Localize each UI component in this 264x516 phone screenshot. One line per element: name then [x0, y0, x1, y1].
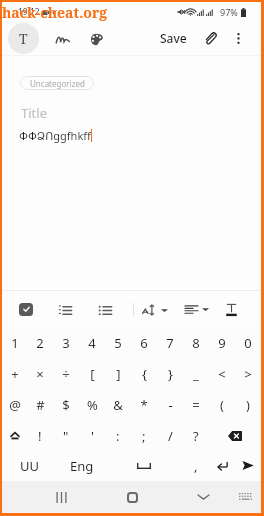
button[interactable]: ; [131, 420, 157, 451]
button[interactable]: $ [53, 389, 79, 420]
button[interactable]: Recents [47, 483, 75, 511]
button[interactable]: , [183, 451, 209, 480]
staticText: 0 [244, 334, 252, 352]
button[interactable]: 8 [183, 327, 209, 358]
button[interactable]: Backspace [209, 420, 261, 451]
staticText: ' [91, 427, 94, 445]
button[interactable]: & [105, 389, 131, 420]
staticText: 4 [88, 334, 96, 352]
staticText: : [116, 427, 120, 445]
button[interactable]: : [105, 420, 131, 451]
button[interactable]: 3 [53, 327, 79, 358]
button[interactable]: 9 [209, 327, 235, 358]
staticText: _ [193, 365, 199, 383]
button[interactable]: ] [105, 358, 131, 389]
button[interactable]: Text format [225, 302, 237, 318]
button[interactable]: @ [2, 389, 27, 420]
staticText: Save [160, 30, 187, 46]
staticText: Eng [70, 457, 94, 475]
staticText: T [19, 29, 28, 48]
staticText: × [36, 365, 44, 383]
button[interactable]: % [79, 389, 105, 420]
button[interactable]: < [209, 358, 235, 389]
staticText: , [194, 457, 198, 475]
staticText: - [168, 396, 173, 414]
button[interactable]: Hide keyboard [189, 483, 217, 511]
staticText: 3 [62, 334, 70, 352]
staticText: 97% [220, 6, 238, 18]
staticText: ÷ [62, 365, 70, 383]
button[interactable]: - [157, 389, 183, 420]
button[interactable]: { [131, 358, 157, 389]
staticText: + [11, 365, 19, 383]
button[interactable]: 1 [2, 327, 27, 358]
button[interactable]: Eng [58, 451, 105, 480]
staticText: ! [38, 427, 42, 445]
staticText: 9 [218, 334, 226, 352]
staticText: hack-cheat.org [2, 3, 108, 22]
staticText: * [140, 396, 148, 414]
button[interactable]: = [183, 389, 209, 420]
button[interactable]: Uncategorized [20, 76, 94, 90]
staticText: $ [62, 396, 70, 414]
button[interactable]: ! [27, 420, 53, 451]
button[interactable]: ' [79, 420, 105, 451]
button[interactable]: 4 [79, 327, 105, 358]
button[interactable]: More options [228, 28, 248, 48]
button[interactable]: 6 [131, 327, 157, 358]
button[interactable]: Save [157, 25, 190, 51]
staticText: ) [246, 396, 250, 414]
button[interactable]: > [235, 358, 261, 389]
staticText: = [192, 396, 200, 414]
button[interactable]: 0 [235, 327, 261, 358]
button[interactable]: Checklist [19, 303, 33, 316]
button[interactable]: } [157, 358, 183, 389]
button[interactable]: Shift [2, 420, 27, 451]
button[interactable]: Alignment [183, 299, 211, 320]
button[interactable]: Change keyboard [231, 483, 259, 511]
button[interactable]: Enter [209, 451, 235, 480]
button[interactable]: Attach [199, 27, 221, 49]
staticText: 19:12 [18, 6, 40, 18]
button[interactable]: [ [79, 358, 105, 389]
button[interactable]: Symbols [2, 451, 58, 480]
button[interactable]: ( [209, 389, 235, 420]
button[interactable]: " [53, 420, 79, 451]
staticText: < [218, 365, 226, 383]
button[interactable]: ÷ [53, 358, 79, 389]
staticText: { [142, 365, 147, 383]
staticText: ; [142, 427, 146, 445]
staticText: ՓՓՁՈggfhkff [19, 128, 91, 143]
staticText: & [113, 396, 123, 414]
staticText: > [244, 365, 252, 383]
button[interactable]: 2 [27, 327, 53, 358]
staticText: 1 [11, 334, 19, 352]
button[interactable]: Home [118, 483, 146, 511]
staticText: ( [220, 396, 224, 414]
button[interactable]: Text mode [8, 23, 39, 54]
button[interactable]: Space [105, 451, 183, 480]
button[interactable]: + [2, 358, 27, 389]
button[interactable]: ) [235, 389, 261, 420]
staticText: / [168, 427, 173, 445]
button[interactable]: Handwriting [50, 27, 74, 51]
button[interactable]: Font size [140, 298, 170, 322]
button[interactable]: # [27, 389, 53, 420]
staticText: % [87, 396, 98, 414]
button[interactable]: _ [183, 358, 209, 389]
button[interactable]: Send [235, 451, 261, 480]
staticText: 7 [166, 334, 174, 352]
button[interactable]: ? [183, 420, 209, 451]
staticText: Uncategorized [30, 78, 85, 89]
staticText: Title [21, 104, 47, 122]
button[interactable]: 7 [157, 327, 183, 358]
button[interactable]: Palette [84, 27, 108, 51]
staticText: @ [9, 396, 21, 414]
button[interactable]: / [157, 420, 183, 451]
button[interactable]: Numbered list [57, 302, 72, 318]
button[interactable]: 5 [105, 327, 131, 358]
button[interactable]: Bullet list [97, 302, 112, 318]
button[interactable]: * [131, 389, 157, 420]
staticText: 6 [140, 334, 148, 352]
button[interactable]: × [27, 358, 53, 389]
